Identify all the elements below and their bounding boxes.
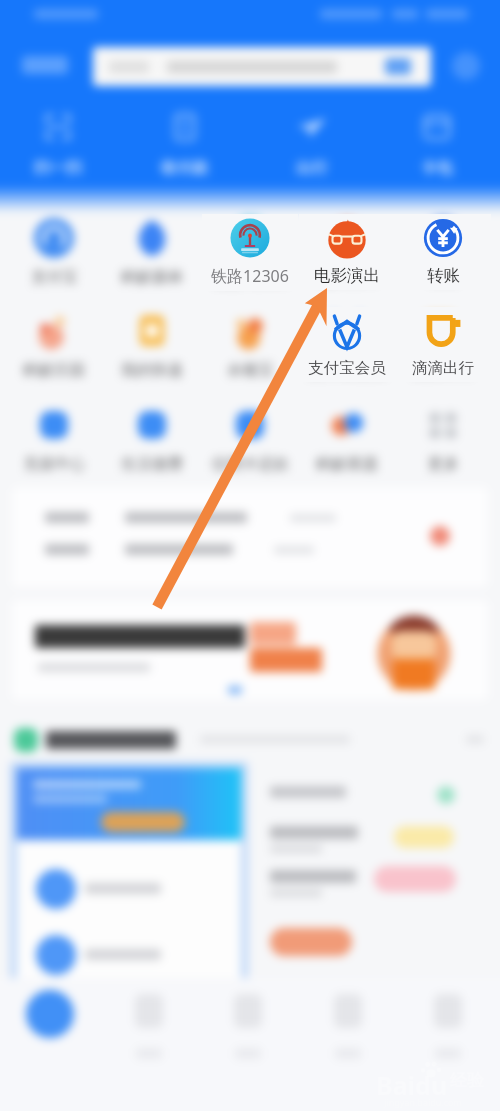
staticText: 蚂蚁星愿 [316,454,378,474]
button[interactable]: 铁路12306 [202,216,298,288]
button[interactable]: 转账 [395,216,491,287]
button[interactable]: 口碑 [200,978,296,1080]
button[interactable]: 朋友 [300,978,396,1080]
button[interactable]: 支付宝会员 [299,307,395,382]
button[interactable] [12,600,488,700]
button[interactable]: Scan [22,56,68,74]
button[interactable]: 支付宝 [6,216,102,287]
staticText: 滴滴出行 [412,360,474,380]
button[interactable]: 铁路12306 [202,214,298,291]
button[interactable]: 卡包 [392,110,482,178]
button[interactable]: 更多 [395,403,491,474]
button[interactable]: 蚂蚁星愿 [299,403,395,474]
staticText: 转账 [427,265,460,286]
staticText: 铁路12306 [211,265,289,287]
staticText: 出行 [296,158,328,178]
staticText: 滴滴出行 [412,358,474,378]
button[interactable]: 蚂蚁庄园 [6,309,102,380]
button[interactable] [93,47,431,86]
button[interactable]: Add [452,52,480,80]
button[interactable]: 扫一扫 [13,110,103,178]
button[interactable]: 转账 [395,214,491,290]
button[interactable]: 电影演出 [299,216,395,287]
button[interactable]: 首页 [2,978,98,1080]
button[interactable]: 电影演出 [299,214,395,290]
button[interactable]: 滴滴出行 [395,307,491,382]
button[interactable]: 收付款 [140,110,230,178]
staticText: 更多 [428,454,459,474]
button[interactable]: 蚂蚁森林 [104,216,200,287]
staticText: 转账 [428,267,459,287]
button[interactable]: 充值中心 [6,403,102,474]
button[interactable]: 我的 [400,978,496,1080]
button[interactable] [14,726,486,754]
staticText: 支付宝 [31,267,78,287]
staticText: 收付款 [161,158,209,178]
button[interactable]: 理财 [101,978,197,1080]
staticText: 生活缴费 [121,454,183,474]
staticText: 充值中心 [23,454,85,474]
button[interactable] [12,487,488,587]
staticText: 余额宝 [227,360,274,380]
staticText: 卡包 [421,158,453,178]
staticText: 我的快递 [121,360,183,380]
button[interactable]: 我的快递 [104,309,200,380]
staticText: 扫一扫 [34,158,82,178]
staticText: 铁路12306 [212,267,288,288]
staticText: 电影演出 [314,265,380,286]
button[interactable]: 余额宝 [202,309,298,380]
staticText: 电影演出 [316,267,378,287]
staticText: 蚂蚁庄园 [23,360,85,380]
button[interactable]: 支付宝会员 [299,309,395,380]
button[interactable]: 出行 [267,110,357,178]
staticText: 信用卡还款 [211,454,289,474]
button[interactable]: 生活缴费 [104,403,200,474]
staticText: 蚂蚁森林 [121,267,183,287]
button[interactable]: 滴滴出行 [395,309,491,380]
staticText: 支付宝会员 [308,358,386,378]
button[interactable] [10,762,248,1044]
button[interactable]: 信用卡还款 [202,403,298,474]
staticText: 支付宝会员 [308,360,386,380]
